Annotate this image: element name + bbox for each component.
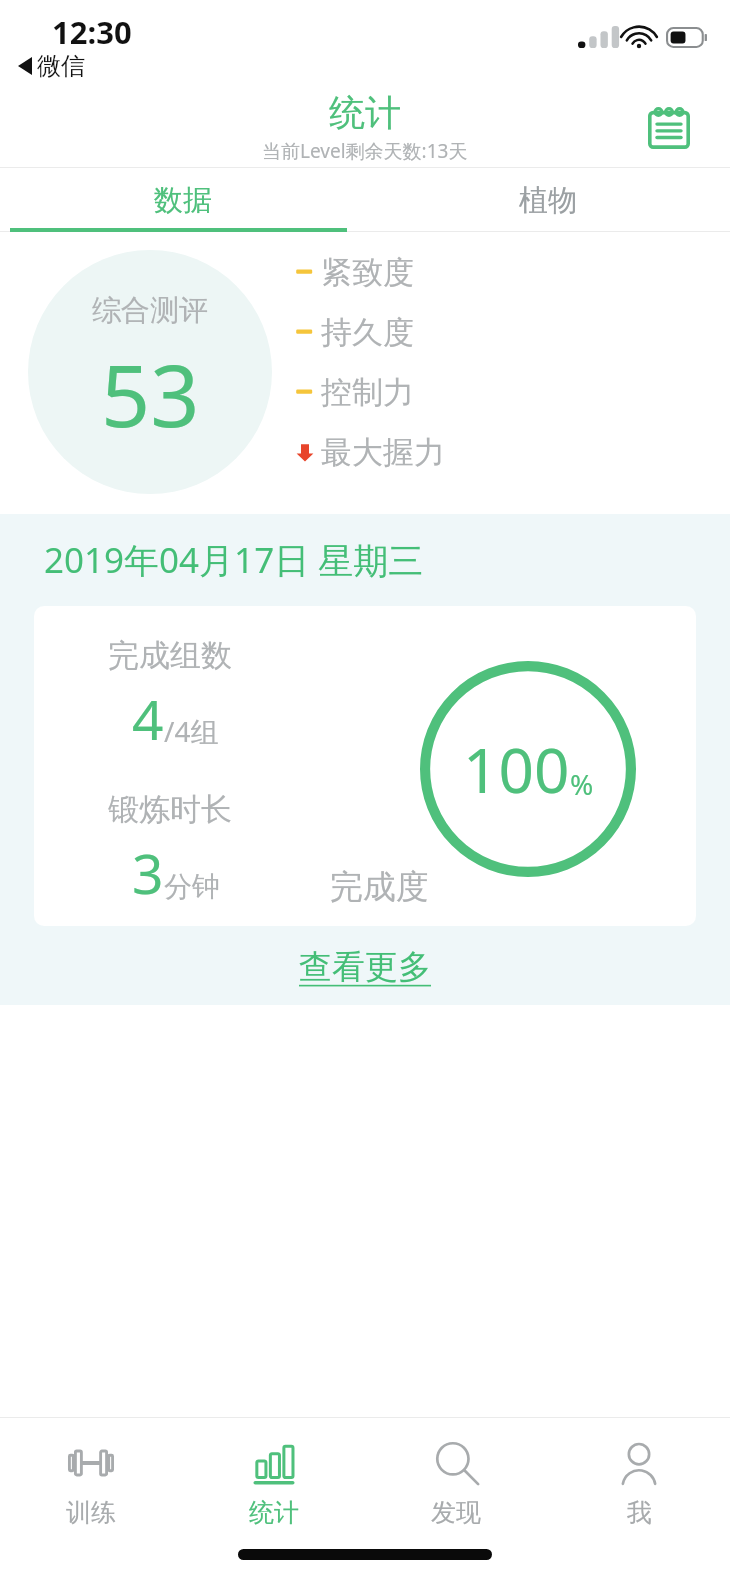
staticText: 12:30	[52, 11, 132, 53]
staticText: 控制力	[321, 373, 414, 412]
staticText: 发现	[431, 1497, 481, 1528]
staticText: 当前Level剩余天数:13天	[262, 138, 468, 164]
staticText: 统计	[329, 90, 401, 135]
staticText: 完成组数	[108, 636, 232, 675]
button[interactable]: 控制力	[295, 362, 730, 422]
staticText: 2019年04月17日 星期三	[44, 536, 424, 584]
button[interactable]: 统计	[183, 1417, 365, 1539]
staticText: 完成度	[330, 866, 429, 908]
staticText: 训练	[66, 1497, 116, 1528]
staticText: 3	[132, 835, 164, 910]
staticText: 综合测评	[92, 292, 208, 329]
staticText: %	[570, 765, 594, 803]
button[interactable]: 最大握力	[295, 422, 730, 482]
button[interactable]: 数据	[0, 168, 365, 232]
staticText: 分钟	[164, 869, 220, 904]
button[interactable]: 记录	[638, 96, 700, 158]
button[interactable]: 训练	[0, 1417, 182, 1539]
staticText: /4组	[164, 712, 219, 750]
button[interactable]: 持久度	[295, 302, 730, 362]
staticText: 微信	[37, 51, 85, 81]
staticText: 统计	[249, 1497, 299, 1528]
staticText: 4	[132, 681, 164, 756]
staticText: 数据	[154, 182, 212, 219]
staticText: 植物	[519, 182, 577, 219]
staticText: 100	[463, 727, 570, 811]
button[interactable]: 查看更多	[289, 942, 441, 992]
staticText: 持久度	[321, 313, 414, 352]
staticText: 我	[627, 1497, 652, 1528]
staticText: 53	[101, 335, 200, 452]
button[interactable]: 发现	[365, 1417, 547, 1539]
staticText: 紧致度	[321, 253, 414, 292]
staticText: 锻炼时长	[108, 790, 232, 829]
button[interactable]: 植物	[365, 168, 730, 232]
button[interactable]: 完成组数	[34, 606, 696, 926]
staticText: 最大握力	[321, 433, 445, 472]
staticText: 查看更多	[299, 946, 431, 988]
button[interactable]: 紧致度	[295, 242, 730, 302]
button[interactable]: 我	[548, 1417, 730, 1539]
